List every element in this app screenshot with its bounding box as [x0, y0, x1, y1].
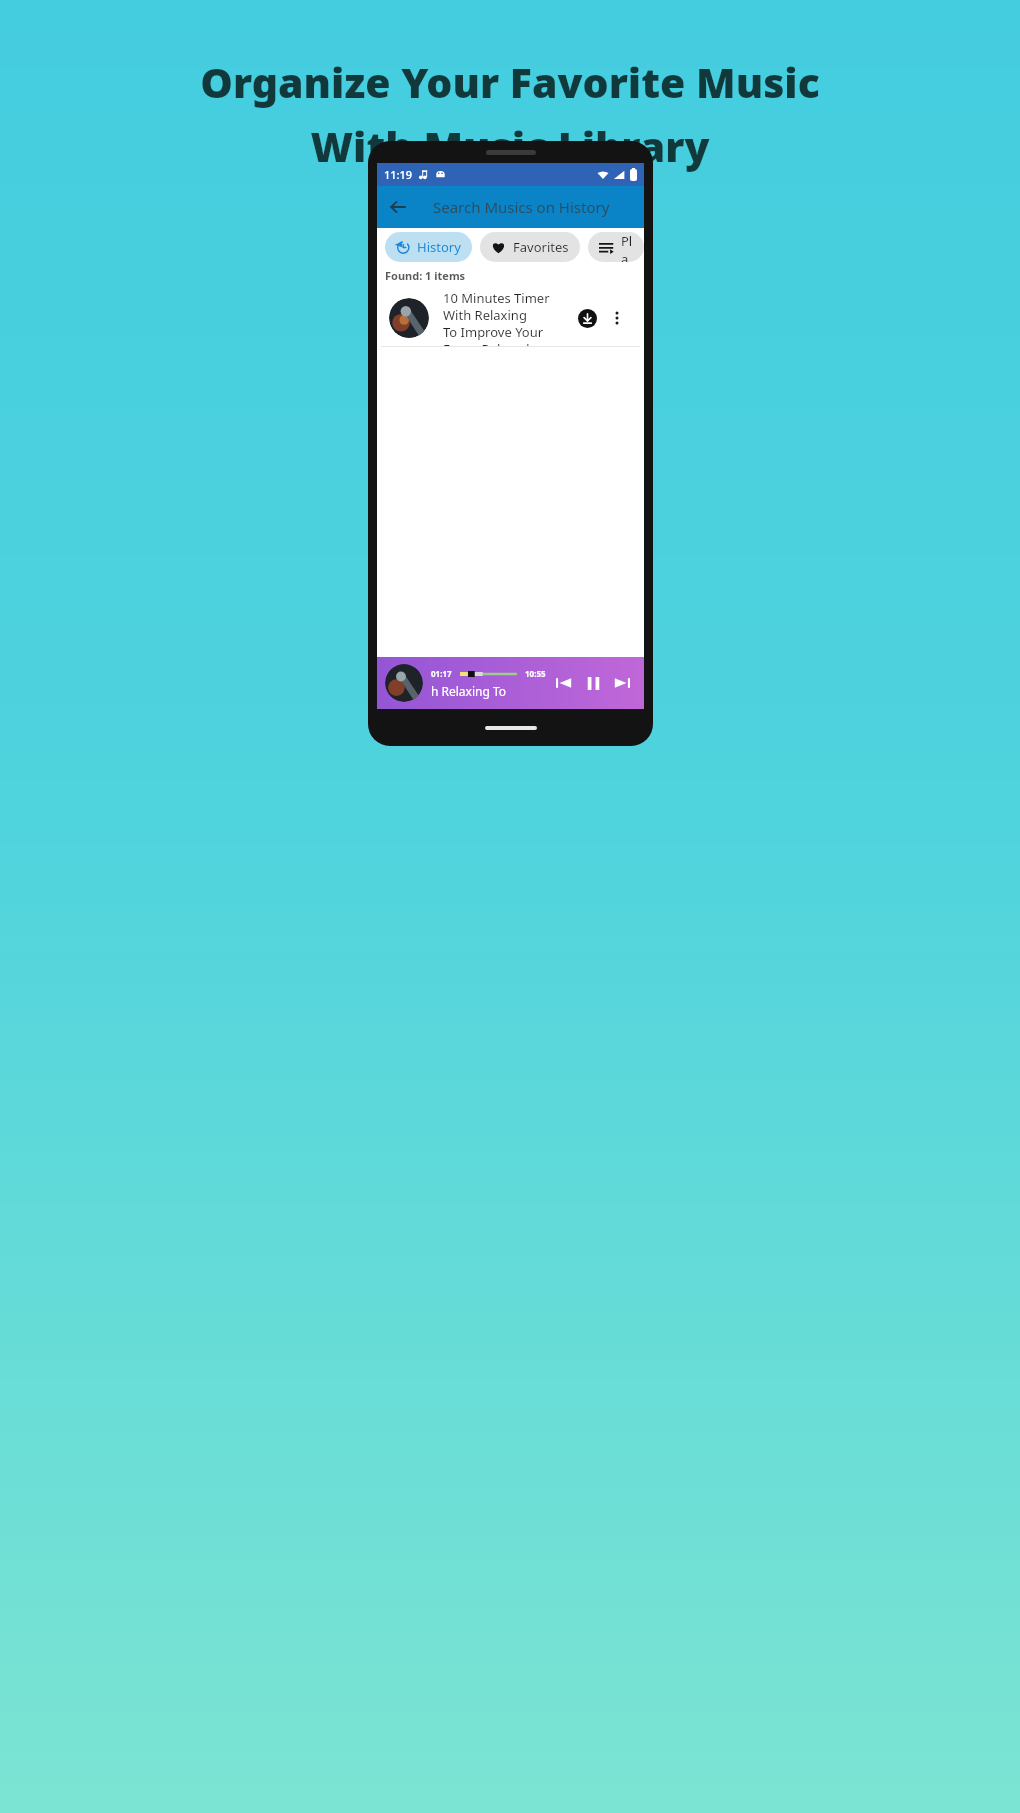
staticText: Organize Your Favorite Music [200, 54, 820, 110]
staticText: Playlists [621, 232, 633, 262]
staticText: 10 Minutes Timer With Relaxing To Improv… [443, 289, 566, 347]
staticText: 10:55 [525, 668, 546, 679]
button[interactable]: Previous [550, 669, 578, 697]
staticText: 11:19 [384, 167, 413, 182]
staticText: Favorites [513, 238, 569, 256]
button[interactable]: Playlists [588, 232, 644, 262]
staticText: Found: 1 items [385, 268, 466, 283]
staticText: With Music Library [310, 118, 710, 174]
button[interactable]: 10 Minutes Timer With Relaxing To Improv… [381, 289, 640, 347]
button[interactable]: 01:17 [377, 657, 644, 709]
button[interactable]: Pause [578, 668, 608, 698]
button[interactable]: History [385, 232, 472, 262]
button[interactable]: More options [602, 303, 632, 333]
button[interactable]: Back [377, 186, 419, 228]
button[interactable]: Downloaded [572, 303, 602, 333]
staticText: h Relaxing To Improve Your F [431, 683, 546, 699]
staticText: Search Musics on History [433, 197, 610, 217]
button[interactable]: Next [608, 669, 636, 697]
button[interactable]: Favorites [480, 232, 580, 262]
staticText: History [417, 238, 461, 256]
staticText: 01:17 [431, 668, 452, 679]
